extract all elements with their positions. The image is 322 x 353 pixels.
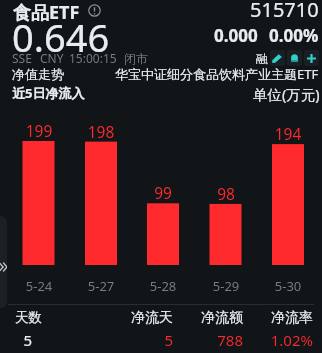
staticText: 天数 (15, 309, 42, 326)
button[interactable]: Price alert (287, 50, 302, 66)
staticText: 515710 (250, 0, 319, 23)
staticText: 闭市 (124, 51, 148, 66)
staticText: 0.00% (269, 24, 319, 47)
staticText: 5-24 (14, 277, 64, 353)
staticText: 0.646 (12, 11, 110, 63)
staticText: 5 (93, 330, 173, 353)
staticText: 15:00:15 (69, 50, 117, 66)
staticText: 99 (138, 182, 188, 353)
staticText: CNY (40, 50, 64, 66)
staticText: 194 (263, 123, 313, 353)
staticText: SSE (12, 50, 32, 66)
staticText: 净值走势 (12, 66, 64, 82)
staticText: 融 (256, 51, 268, 66)
staticText: 788 (163, 330, 243, 353)
button[interactable]: Add to watchlist (304, 50, 319, 66)
staticText: 198 (76, 121, 126, 353)
staticText: 食品ETF (13, 0, 80, 25)
staticText: 5-29 (201, 277, 251, 353)
staticText: 单位(万元) (253, 84, 320, 104)
staticText: 5-30 (263, 277, 313, 353)
staticText: 净流额 (163, 309, 243, 353)
staticText: 近5日净流入 (12, 84, 85, 102)
staticText: 华宝中证细分食品饮料产业主题ETF (115, 65, 321, 83)
staticText: 净流天 (93, 309, 173, 353)
button[interactable]: Edit (270, 50, 285, 66)
staticText: 199 (14, 120, 64, 353)
staticText: 5-28 (138, 277, 188, 353)
staticText: 5 (0, 330, 32, 353)
staticText: 1.02% (233, 330, 313, 353)
staticText: 净流率 (233, 309, 313, 353)
staticText: 98 (201, 183, 251, 353)
staticText: 5-27 (76, 277, 126, 353)
button[interactable]: Expand panel (0, 216, 7, 308)
staticText: 0.000 (214, 24, 258, 47)
button[interactable]: Info (86, 2, 102, 18)
